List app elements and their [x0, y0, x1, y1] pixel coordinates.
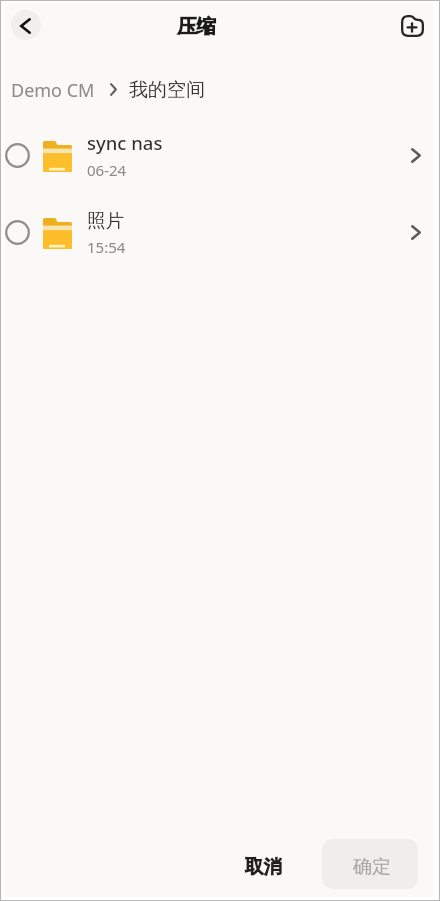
button[interactable]: Back [11, 10, 41, 40]
button[interactable]: Demo CM [11, 76, 95, 104]
staticText: 压缩 [177, 14, 216, 39]
staticText: 确定 [353, 855, 391, 879]
button[interactable]: New folder [395, 9, 429, 43]
staticText: sync nas [87, 130, 163, 155]
staticText: 15:54 [87, 237, 126, 257]
staticText: Demo CM [11, 78, 95, 103]
staticText: 06-24 [87, 160, 127, 180]
button[interactable]: 我的空间 [129, 76, 205, 104]
button[interactable]: 取消 [237, 841, 290, 891]
button[interactable]: Select sync nas [0, 118, 440, 195]
staticText: 取消 [245, 855, 282, 878]
staticText: 照片 [87, 209, 124, 232]
staticText: 我的空间 [129, 78, 205, 102]
button[interactable]: Select 照片 [0, 195, 440, 272]
button[interactable]: Open 照片 [399, 216, 432, 249]
button[interactable]: Select 照片 [1, 216, 34, 249]
button[interactable]: Select sync nas [1, 139, 34, 172]
button[interactable]: Open sync nas [399, 139, 432, 172]
button[interactable]: 确定 [322, 839, 418, 889]
